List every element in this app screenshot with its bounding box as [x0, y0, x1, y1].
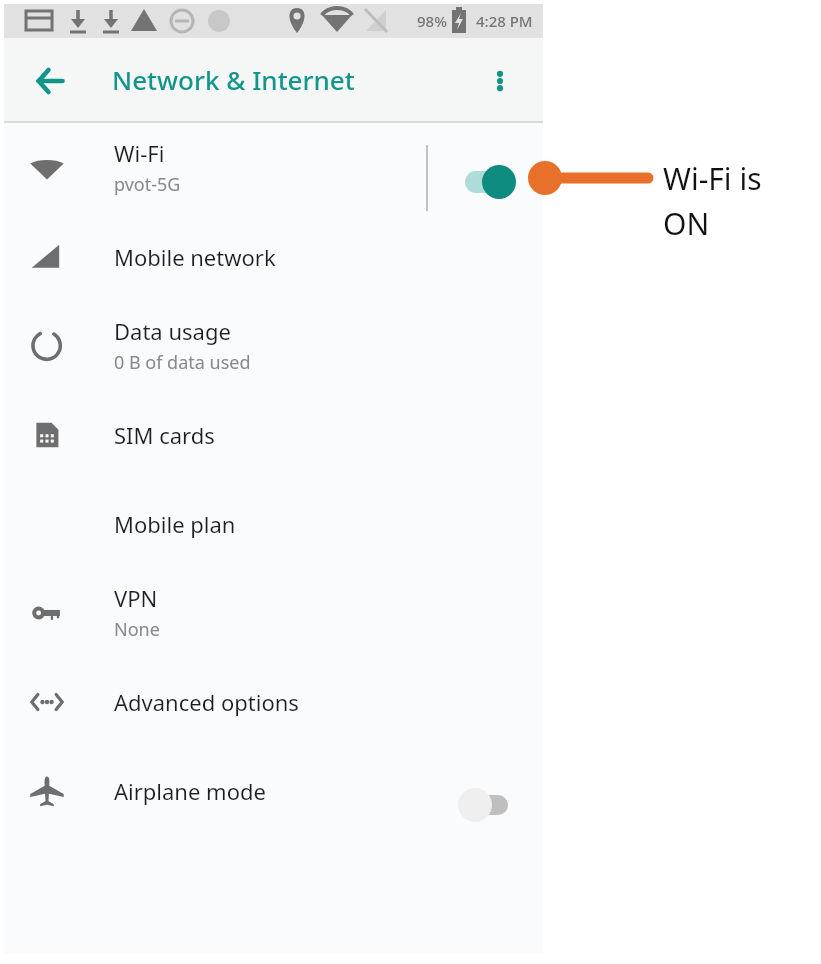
button[interactable]: Mobile network: [4, 212, 543, 301]
button[interactable]: Back: [24, 55, 76, 107]
button[interactable]: SIM cards: [4, 390, 543, 479]
staticText: None: [114, 617, 160, 642]
button[interactable]: More options: [475, 56, 525, 106]
staticText: Mobile network: [114, 242, 543, 272]
button[interactable]: Mobile plan: [4, 479, 543, 568]
staticText: 0 B of data used: [114, 350, 251, 375]
button[interactable]: Data usage: [4, 301, 543, 390]
button[interactable]: Airplane mode toggle, off: [456, 788, 518, 822]
button[interactable]: VPN: [4, 568, 543, 657]
staticText: SIM cards: [114, 420, 543, 450]
staticText: Network & Internet: [112, 62, 355, 97]
staticText: pvot-5G: [114, 172, 181, 197]
button[interactable]: Wi-Fi toggle, on: [459, 165, 521, 199]
staticText: Mobile plan: [114, 509, 543, 539]
staticText: VPN: [114, 583, 158, 613]
staticText: Advanced options: [114, 687, 543, 717]
staticText: Wi-Fi: [114, 138, 165, 168]
staticText: Wi-Fi is ON: [663, 158, 762, 244]
staticText: Data usage: [114, 316, 231, 346]
button[interactable]: Airplane mode: [4, 746, 543, 835]
button[interactable]: Wi-Fi: [4, 123, 543, 212]
staticText: 98%: [417, 11, 447, 31]
staticText: 4:28 PM: [476, 11, 533, 31]
staticText: Airplane mode: [114, 776, 543, 806]
button[interactable]: Advanced options: [4, 657, 543, 746]
